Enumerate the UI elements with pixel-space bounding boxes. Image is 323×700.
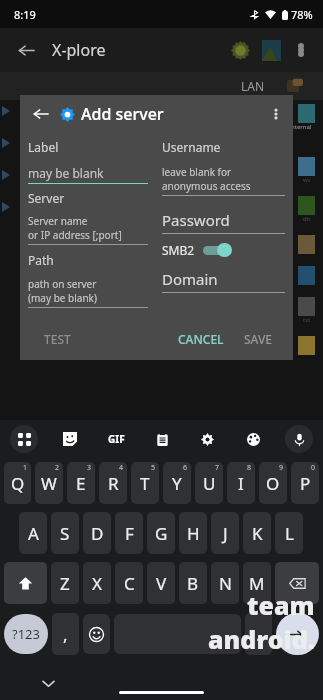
- button[interactable]: CANCEL: [170, 327, 232, 351]
- staticText: CANCEL: [178, 331, 224, 347]
- button[interactable]: Y: [163, 462, 191, 504]
- staticText: L: [285, 522, 294, 545]
- button[interactable]: Themes: [239, 425, 267, 453]
- button[interactable]: K: [243, 512, 271, 554]
- button[interactable]: M: [243, 562, 271, 604]
- staticText: P: [300, 472, 311, 495]
- button[interactable]: Shift: [4, 562, 47, 604]
- staticText: O: [266, 472, 280, 495]
- button[interactable]: O: [259, 462, 287, 504]
- button[interactable]: Backspace: [275, 562, 319, 604]
- button[interactable]: U: [195, 462, 223, 504]
- button[interactable]: ?123: [4, 614, 48, 654]
- button[interactable]: S: [51, 512, 79, 554]
- staticText: N: [219, 572, 232, 595]
- staticText: H: [187, 522, 200, 545]
- staticText: 3: [87, 463, 92, 473]
- staticText: D: [91, 522, 104, 545]
- button[interactable]: GIF: [102, 425, 130, 453]
- button[interactable]: X: [83, 562, 111, 604]
- staticText: SAVE: [244, 331, 273, 347]
- button[interactable]: B: [179, 562, 207, 604]
- staticText: R: [108, 472, 119, 495]
- staticText: ?123: [12, 625, 40, 643]
- button[interactable]: Gallery: [255, 34, 287, 66]
- staticText: Label: [28, 139, 59, 155]
- button[interactable]: Clipboard: [148, 425, 176, 453]
- staticText: ,: [63, 623, 68, 646]
- staticText: txt: [303, 316, 311, 324]
- staticText: 0: [311, 463, 316, 473]
- staticText: X: [92, 572, 102, 595]
- button[interactable]: Emoji: [83, 614, 110, 654]
- button[interactable]: R: [99, 462, 127, 504]
- staticText: Server name: [28, 214, 88, 228]
- button[interactable]: Back: [8, 32, 44, 68]
- button[interactable]: C: [115, 562, 143, 604]
- button[interactable]: Badge: [225, 35, 255, 65]
- button[interactable]: J: [211, 512, 239, 554]
- staticText: Username: [162, 139, 221, 155]
- button[interactable]: More options: [263, 101, 289, 127]
- button[interactable]: SMB2: [162, 242, 233, 258]
- staticText: 78%: [291, 7, 313, 22]
- staticText: Server: [28, 190, 65, 206]
- button[interactable]: Z: [51, 562, 79, 604]
- staticText: 6: [183, 463, 188, 473]
- button[interactable]: Enter: [276, 613, 319, 655]
- staticText: may be blank: [28, 165, 104, 181]
- staticText: E: [76, 472, 86, 495]
- staticText: 1: [23, 463, 28, 473]
- button[interactable]: Apps: [10, 425, 38, 453]
- button[interactable]: P: [291, 462, 319, 504]
- button[interactable]: V: [147, 562, 175, 604]
- staticText: I: [238, 472, 244, 495]
- button[interactable]: F: [115, 512, 143, 554]
- button[interactable]: H: [179, 512, 207, 554]
- staticText: T: [140, 472, 150, 495]
- staticText: leave blank for: [162, 165, 232, 179]
- button[interactable]: ,: [52, 613, 79, 655]
- button[interactable]: Back: [26, 99, 56, 129]
- staticText: B: [187, 572, 199, 595]
- button[interactable]: L: [275, 512, 303, 554]
- button[interactable]: D: [83, 512, 111, 554]
- staticText: ws: [303, 176, 311, 184]
- button[interactable]: Q: [4, 462, 31, 504]
- button[interactable]: I: [227, 462, 255, 504]
- button[interactable]: T: [131, 462, 159, 504]
- staticText: LAN: [241, 78, 265, 94]
- staticText: path on server: [28, 277, 97, 291]
- button[interactable]: G: [147, 512, 175, 554]
- staticText: M: [249, 572, 265, 595]
- staticText: dir: [303, 215, 311, 223]
- button[interactable]: A: [19, 512, 47, 554]
- button[interactable]: TEST: [38, 327, 77, 351]
- button[interactable]: Stickers: [56, 425, 84, 453]
- staticText: SMB2: [162, 242, 195, 258]
- staticText: team: [247, 588, 315, 622]
- button[interactable]: SAVE: [238, 327, 279, 351]
- staticText: 8: [247, 463, 252, 473]
- button[interactable]: W: [35, 462, 63, 504]
- staticText: TEST: [44, 331, 71, 347]
- button[interactable]: E: [67, 462, 95, 504]
- button[interactable]: .: [245, 613, 272, 655]
- staticText: 5: [151, 463, 156, 473]
- staticText: Domain: [162, 269, 218, 289]
- staticText: 4: [119, 463, 124, 473]
- staticText: Q: [11, 472, 25, 495]
- button[interactable]: Hide keyboard: [38, 673, 58, 693]
- staticText: 7: [215, 463, 220, 473]
- button[interactable]: N: [211, 562, 239, 604]
- button[interactable]: Settings: [193, 425, 221, 453]
- staticText: Password: [162, 210, 230, 230]
- button[interactable]: More options: [287, 36, 315, 64]
- staticText: Add server: [81, 103, 164, 125]
- staticText: 9: [279, 463, 284, 473]
- staticText: X-plore: [52, 39, 106, 61]
- staticText: Internal sh…: [289, 123, 323, 131]
- staticText: anonymous access: [162, 179, 251, 193]
- button[interactable]: Voice input: [285, 425, 313, 453]
- button[interactable]: Space: [114, 614, 241, 654]
